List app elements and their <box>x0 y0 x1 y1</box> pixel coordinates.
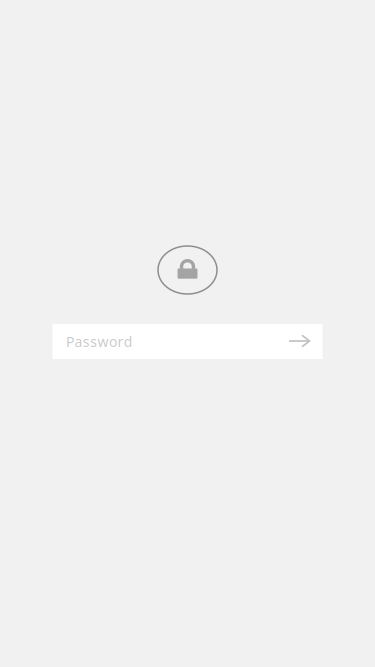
staticText: Password <box>66 332 133 351</box>
button[interactable]: Password <box>52 324 280 359</box>
button[interactable]: Submit password <box>280 324 322 359</box>
